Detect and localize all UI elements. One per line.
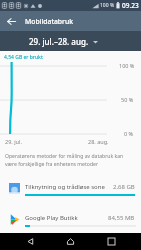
button[interactable]: Tilknytning og trådløse sone <box>0 183 141 207</box>
staticText: 29. jul. <box>5 138 22 145</box>
staticText: 100 % <box>100 2 115 9</box>
staticText: 0 % <box>124 130 134 137</box>
staticText: 09.23 <box>122 1 139 10</box>
staticText: Google Play Butikk <box>25 214 78 222</box>
button[interactable]: Back <box>18 233 42 250</box>
button[interactable]: Back <box>0 11 23 31</box>
staticText: 100 % <box>119 62 135 69</box>
button[interactable]: Google Play Butikk <box>0 214 141 238</box>
staticText: 50 % <box>121 96 134 103</box>
button[interactable]: 29. jul.–28. aug. <box>25 33 102 50</box>
staticText: 84,55 MB <box>108 214 135 222</box>
staticText: 2,68 GB <box>113 183 135 191</box>
staticText: Operatørens metoder for måling av databr… <box>5 153 124 167</box>
button[interactable]: Recents <box>99 233 123 250</box>
staticText: Tilknytning og trådløse sone <box>25 183 105 191</box>
staticText: 29. jul.–28. aug. <box>29 36 89 47</box>
staticText: Mobildatabruk <box>25 17 74 26</box>
staticText: 28. aug. <box>88 138 109 145</box>
staticText: 4,54 GB er brukt <box>4 54 43 61</box>
button[interactable]: Home <box>58 233 82 250</box>
